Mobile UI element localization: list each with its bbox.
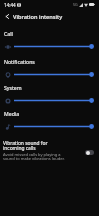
staticText: Notifications [4, 58, 35, 65]
staticText: 5G [73, 2, 78, 7]
button[interactable]: System [0, 81, 99, 105]
button[interactable]: Back [2, 11, 13, 22]
staticText: Call [4, 30, 13, 37]
staticText: Avoid missed calls by playing a sound to… [3, 152, 70, 162]
button[interactable]: Call [0, 27, 99, 51]
button[interactable]: Media [0, 107, 99, 131]
button[interactable]: Notifications [0, 55, 99, 79]
button[interactable]: Vibration sound for incoming calls [0, 140, 99, 162]
staticText: Media [4, 110, 20, 117]
staticText: Vibration sound for incoming calls [3, 140, 70, 152]
staticText: Vibration intensity [13, 13, 63, 21]
staticText: System [4, 84, 22, 91]
staticText: 14:44 [4, 2, 16, 8]
